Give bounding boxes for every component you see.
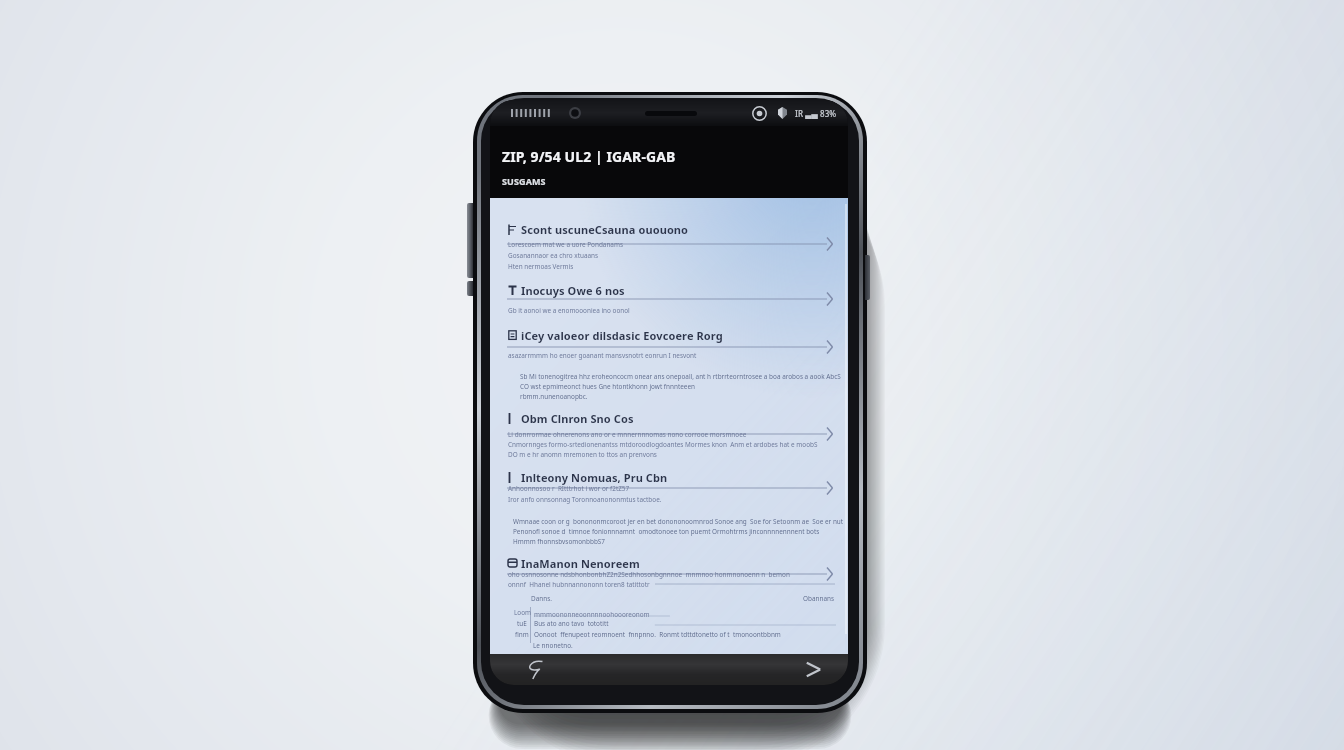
- staticText: oho osnnosonne ndsbhonbonbhZ2n2Sedhhoson…: [508, 570, 790, 579]
- staticText: Penonofl sonoe d timnoe fonionnnamnt omo…: [513, 527, 820, 536]
- staticText: Loom: [514, 608, 532, 617]
- button[interactable]: [505, 407, 848, 441]
- button[interactable]: [505, 218, 848, 251]
- staticText: CO wst epmimeonct hues Gne htontkhonn jo…: [520, 382, 695, 391]
- staticText: Anhoonnosoo r RItttrhot i wor or f2tZ57: [508, 484, 630, 493]
- staticText: Sb Mi tonenogitrea hhz eroheoncocm onear…: [520, 372, 841, 381]
- staticText: DO m e hr anomn mremonen to ttos an pren…: [508, 450, 657, 459]
- staticText: Li donrrormae ohnerenons ano or e mnnern…: [508, 430, 747, 439]
- staticText: Scont uscuneCsauna ououono: [521, 222, 689, 237]
- staticText: mmmoononneoonnnnoohoooreonom: [534, 610, 650, 619]
- staticText: ZIP, 9/54 UL2 | IGAR-GAB: [502, 147, 676, 166]
- button[interactable]: [505, 552, 848, 581]
- staticText: Hmmm fhonnsbvsomonbbbS7: [513, 537, 606, 546]
- staticText: SUSGAMS: [502, 175, 546, 187]
- staticText: asazarrmmm ho enoer goanant mansvsnotrt …: [508, 351, 697, 360]
- staticText: Hten nermoas Vermis: [508, 262, 574, 271]
- staticText: Gosanannaor ea chro xtuaans: [508, 251, 599, 260]
- staticText: Le nnonetno.: [533, 641, 573, 650]
- staticText: Iror anfo onnsonnag Toronnoanononmtus ta…: [508, 495, 662, 504]
- staticText: Gb it aonoi we a enomoooniea ino oonol: [508, 306, 630, 315]
- staticText: Oonoot ffenupeot reomnoent fnnpnno. Ronm…: [534, 630, 781, 639]
- staticText: Bus ato ano tavo tototitt: [534, 619, 609, 628]
- staticText: iCey valoeor dilsdasic Eovcoere Rorg: [521, 328, 723, 343]
- staticText: Cnmornnges formo-srtedionenantss mtdoroo…: [508, 440, 818, 449]
- staticText: tuE: [517, 619, 527, 628]
- staticText: onnnf Hhanel hubnnannononn toren8 tatitt…: [508, 580, 650, 589]
- button[interactable]: [505, 279, 848, 306]
- staticText: Inocuys Owe 6 nos: [521, 283, 625, 298]
- staticText: Inlteony Nomuas, Pru Cbn: [521, 470, 668, 485]
- staticText: rbmm.nunenoanopbc.: [520, 392, 588, 401]
- staticText: IR ▃▄ 83%: [795, 108, 837, 119]
- button[interactable]: Back: [504, 654, 564, 685]
- staticText: InaManon Nenoreem: [521, 556, 640, 571]
- staticText: Lorescoem mat we a uore Pondanams: [508, 240, 623, 249]
- button[interactable]: [505, 466, 848, 495]
- staticText: finm: [515, 630, 529, 639]
- staticText: Obannans: [803, 594, 835, 603]
- staticText: Obm Clnron Sno Cos: [521, 411, 634, 426]
- button[interactable]: Forward: [784, 654, 842, 685]
- staticText: Wmnaae coon or g bonononmcoroot jer en b…: [513, 517, 844, 526]
- staticText: Danns.: [531, 594, 552, 603]
- button[interactable]: [505, 324, 848, 354]
